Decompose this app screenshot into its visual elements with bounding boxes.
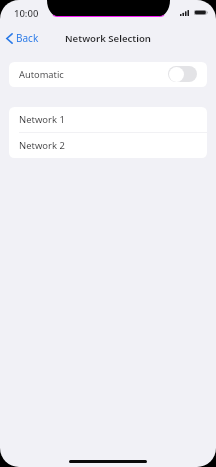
staticText: Network 1	[19, 113, 65, 126]
staticText: 10:00	[14, 7, 39, 20]
button[interactable]: Automatic	[168, 66, 197, 82]
button[interactable]: Automatic	[9, 62, 207, 87]
button[interactable]: Network 2	[9, 133, 207, 158]
button[interactable]: Network 1	[9, 107, 207, 132]
staticText: Network Selection	[0, 32, 216, 45]
staticText: Automatic	[19, 68, 64, 81]
button[interactable]: Back	[3, 28, 42, 48]
staticText: Network 2	[19, 139, 65, 152]
staticText: Back	[16, 31, 39, 45]
